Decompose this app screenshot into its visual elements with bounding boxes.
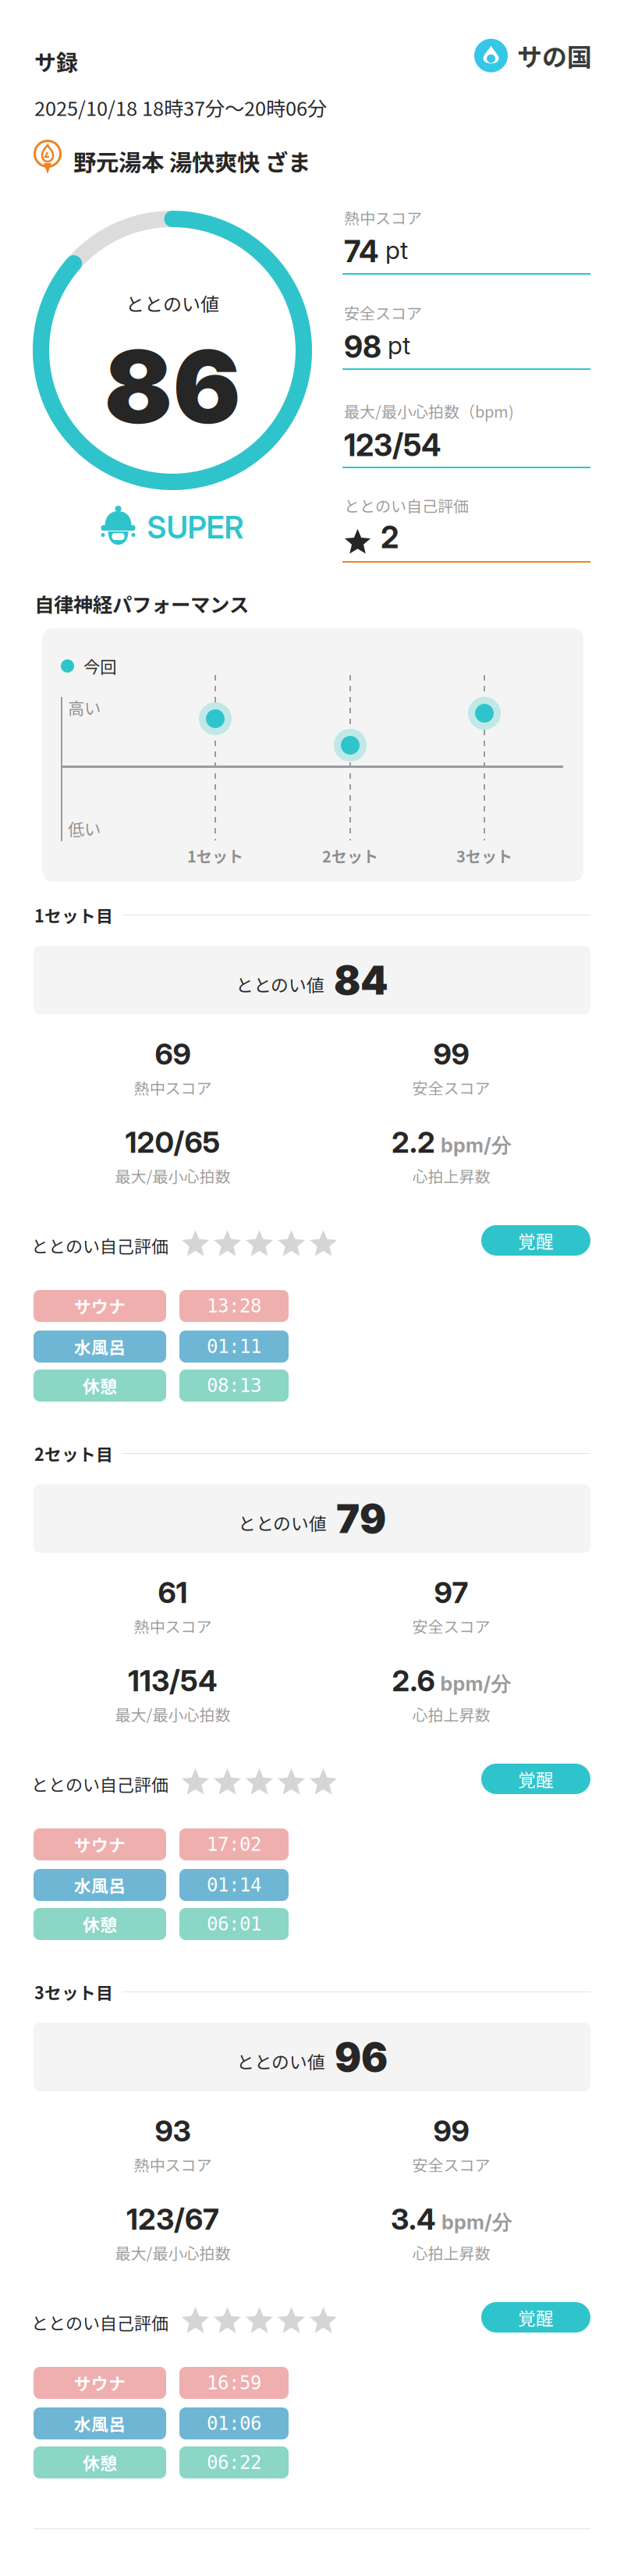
staticText: 熱中スコア xyxy=(134,2153,212,2176)
staticText: 123/54 xyxy=(344,427,441,463)
staticText: 熱中スコア xyxy=(134,1076,212,1099)
staticText: ととのい自己評価 xyxy=(31,2310,168,2335)
staticText: 97 xyxy=(434,1575,468,1610)
staticText: 休憩 xyxy=(83,1912,117,1936)
staticText: 99 xyxy=(433,1036,469,1072)
staticText: bpm/分 xyxy=(441,1133,511,1158)
staticText: サウナ xyxy=(74,1832,126,1857)
staticText: 心拍上昇数 xyxy=(412,2241,490,2264)
staticText: 2.2 xyxy=(392,1125,435,1160)
staticText: 水風呂 xyxy=(74,2411,126,2436)
button[interactable]: 覚醒 xyxy=(481,1225,590,1256)
staticText: 1セット目 xyxy=(34,903,113,927)
staticText: 61 xyxy=(158,1575,188,1610)
staticText: 最大/最小心拍数 xyxy=(115,2241,230,2264)
staticText: 野元湯本 湯快爽快 ざま xyxy=(73,144,310,178)
staticText: 今回 xyxy=(83,654,116,678)
staticText: 最大/最小心拍数 xyxy=(115,1703,230,1726)
staticText: 1セット xyxy=(187,844,243,867)
staticText: 79 xyxy=(336,1495,386,1542)
staticText: SUPER xyxy=(147,509,244,546)
staticText: 08:13 xyxy=(207,1375,261,1396)
staticText: 2セット xyxy=(322,844,378,867)
staticText: 熱中スコア xyxy=(344,206,422,229)
staticText: ととのい自己評価 xyxy=(344,494,469,517)
staticText: 3.4 xyxy=(391,2201,436,2237)
staticText: 2 xyxy=(381,519,399,555)
staticText: ととのい値 xyxy=(126,290,219,317)
staticText: 低い xyxy=(68,816,101,840)
staticText: 高い xyxy=(68,695,101,719)
staticText: 安全スコア xyxy=(344,301,422,324)
staticText: 覚醒 xyxy=(518,1228,554,1253)
button[interactable]: 覚醒 xyxy=(481,2302,590,2333)
staticText: 水風呂 xyxy=(74,1873,126,1897)
staticText: 熱中スコア xyxy=(134,1615,212,1637)
staticText: 2025/10/18 18時37分〜20時06分 xyxy=(34,93,327,122)
staticText: サウナ xyxy=(74,2370,126,2395)
staticText: bpm/分 xyxy=(440,1672,511,1697)
staticText: 2.6 xyxy=(392,1663,435,1698)
staticText: 01:11 xyxy=(207,1336,261,1357)
staticText: 心拍上昇数 xyxy=(412,1703,490,1726)
staticText: サウナ xyxy=(74,1294,126,1318)
staticText: 01:06 xyxy=(207,2413,261,2434)
staticText: 06:22 xyxy=(207,2452,261,2473)
staticText: 17:02 xyxy=(207,1833,261,1855)
staticText: 96 xyxy=(335,2033,388,2081)
staticText: 安全スコア xyxy=(412,1076,490,1099)
staticText: pt xyxy=(388,330,410,360)
staticText: 16:59 xyxy=(207,2372,261,2394)
staticText: 120/65 xyxy=(125,1125,220,1160)
staticText: 01:14 xyxy=(207,1874,261,1896)
staticText: 3セット目 xyxy=(34,1980,113,2004)
staticText: 最大/最小心拍数 xyxy=(115,1164,230,1187)
staticText: 水風呂 xyxy=(74,1334,126,1359)
staticText: 覚醒 xyxy=(518,2305,554,2330)
staticText: 113/54 xyxy=(128,1663,218,1698)
staticText: 最大/最小心拍数（bpm) xyxy=(344,400,514,422)
staticText: 2セット目 xyxy=(34,1441,113,1466)
staticText: 休憩 xyxy=(83,2450,117,2475)
staticText: 安全スコア xyxy=(412,2153,490,2176)
staticText: サの国 xyxy=(517,37,592,74)
staticText: 69 xyxy=(155,1036,191,1072)
staticText: 心拍上昇数 xyxy=(412,1164,490,1187)
staticText: 06:01 xyxy=(207,1913,261,1935)
staticText: 13:28 xyxy=(207,1295,261,1317)
staticText: ととのい値 xyxy=(236,2048,325,2074)
staticText: pt xyxy=(385,235,408,265)
staticText: 84 xyxy=(334,956,388,1004)
staticText: ととのい自己評価 xyxy=(31,1771,168,1796)
staticText: 3セット xyxy=(456,844,512,867)
staticText: bpm/分 xyxy=(441,2210,512,2235)
staticText: 123/67 xyxy=(126,2201,219,2237)
staticText: 93 xyxy=(155,2113,191,2149)
staticText: 99 xyxy=(433,2113,469,2149)
staticText: ととのい値 xyxy=(238,1510,327,1535)
staticText: 自律神経パフォーマンス xyxy=(34,589,249,618)
staticText: サ録 xyxy=(34,45,78,77)
button[interactable]: 覚醒 xyxy=(481,1764,590,1794)
staticText: ととのい自己評価 xyxy=(31,1233,168,1258)
staticText: 覚醒 xyxy=(518,1766,554,1792)
staticText: 74 xyxy=(344,233,379,270)
staticText: 86 xyxy=(104,325,241,448)
staticText: 休憩 xyxy=(83,1373,117,1398)
staticText: 安全スコア xyxy=(412,1615,490,1637)
staticText: 98 xyxy=(344,329,381,365)
staticText: ととのい値 xyxy=(236,971,324,997)
